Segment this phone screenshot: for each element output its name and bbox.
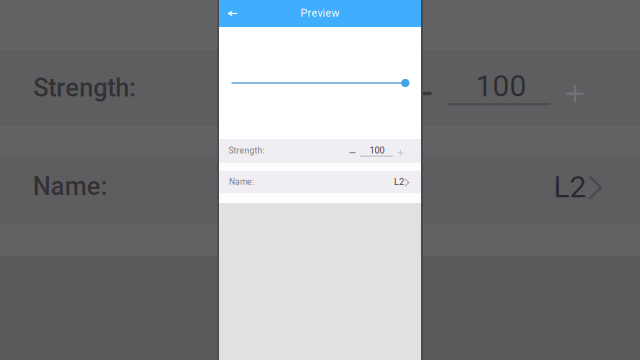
button[interactable]: Name:	[219, 171, 421, 193]
staticText: Strength:	[228, 146, 264, 156]
staticText: L2	[394, 176, 404, 187]
staticText: L2	[553, 169, 586, 205]
button[interactable]: Strength:	[219, 139, 421, 163]
staticText: Strength:	[33, 73, 136, 103]
staticText: Preview	[300, 7, 339, 19]
button[interactable]: Strength slider	[219, 27, 421, 139]
staticText: 100	[370, 145, 385, 156]
staticText: Name:	[229, 177, 254, 187]
staticText: 100	[475, 68, 526, 104]
button[interactable]: Back	[219, 0, 252, 27]
staticText: Name:	[33, 172, 108, 201]
